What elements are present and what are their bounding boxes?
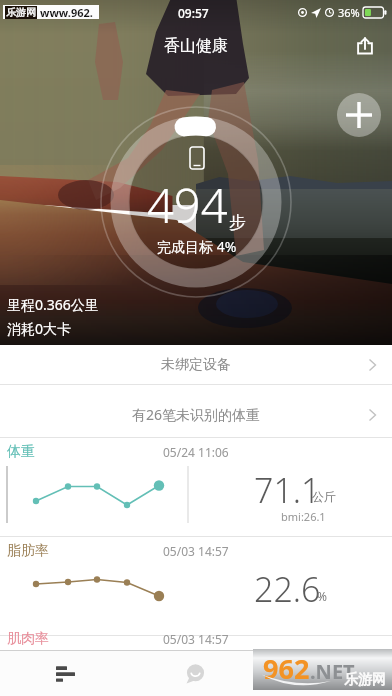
staticText: 完成目标 4% [157, 237, 237, 256]
staticText: % [317, 588, 327, 604]
staticText: 962 [263, 650, 310, 687]
staticText: www.962.net [40, 5, 99, 19]
staticText: 体重 [7, 443, 35, 461]
staticText: 09:57 [178, 5, 209, 21]
staticText: 494 [147, 173, 228, 237]
staticText: 脂肪率 [7, 542, 49, 560]
button[interactable]: 体重 [0, 438, 392, 537]
button[interactable]: 未绑定设备 [0, 345, 392, 385]
staticText: 未绑定设备 [161, 356, 231, 374]
staticText: .NET [310, 658, 355, 685]
button[interactable]: 有26笔未识别的体重 [0, 391, 392, 438]
staticText: 05/03 14:57 [163, 631, 229, 647]
staticText: bmi:26.1 [281, 509, 326, 524]
staticText: 消耗0大卡 [7, 319, 72, 338]
button[interactable]: Me [261, 651, 392, 696]
staticText: 里程0.366公里 [7, 295, 99, 314]
button[interactable]: Share [350, 31, 380, 61]
button[interactable]: Add [337, 93, 381, 137]
staticText: 乐游网 [6, 6, 36, 19]
staticText: 71.1 [254, 467, 321, 513]
staticText: 22.6 [254, 566, 321, 612]
staticText: 05/24 11:06 [163, 444, 229, 460]
staticText: 步 [229, 212, 246, 233]
staticText: 05/03 14:57 [163, 543, 229, 559]
button[interactable]: 肌肉率 [0, 628, 392, 650]
button[interactable]: 脂肪率 [0, 537, 392, 636]
staticText: 公斤 [312, 489, 336, 504]
button[interactable]: Chat [130, 651, 261, 696]
staticText: 肌肉率 [7, 630, 49, 648]
button[interactable]: Stats [0, 651, 130, 696]
staticText: 36% [338, 5, 360, 20]
staticText: 香山健康 [164, 36, 228, 56]
staticText: 有26笔未识别的体重 [132, 405, 261, 424]
staticText: 乐游网 [344, 671, 386, 689]
